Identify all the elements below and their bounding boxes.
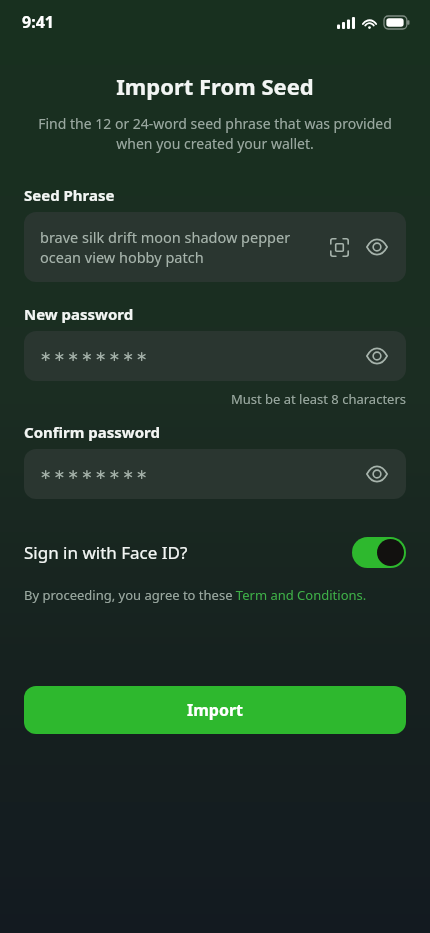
button[interactable]: ∗∗∗∗∗∗∗∗ bbox=[24, 449, 406, 499]
staticText: Import bbox=[187, 699, 244, 721]
button[interactable]: ∗∗∗∗∗∗∗∗ bbox=[24, 331, 406, 381]
staticText: New password bbox=[24, 304, 406, 324]
button[interactable]: Show new password bbox=[362, 341, 392, 371]
staticText: brave silk drift moon shadow pepper ocea… bbox=[40, 227, 291, 268]
staticText: Import From Seed bbox=[0, 71, 430, 101]
staticText: Confirm password bbox=[24, 422, 406, 442]
staticText: ∗∗∗∗∗∗∗∗ bbox=[40, 466, 150, 482]
staticText: ∗∗∗∗∗∗∗∗ bbox=[40, 348, 150, 364]
other: Face ID toggle, on bbox=[352, 537, 406, 568]
button[interactable]: Scan QR code bbox=[324, 232, 354, 262]
staticText: Must be at least 8 characters bbox=[24, 390, 406, 408]
button[interactable]: Sign in with Face ID? bbox=[0, 529, 430, 576]
staticText: 9:41 bbox=[22, 11, 54, 33]
staticText: Seed Phrase bbox=[24, 185, 406, 205]
button[interactable]: Show seed phrase bbox=[362, 232, 392, 262]
button[interactable]: Show confirm password bbox=[362, 459, 392, 489]
staticText: Sign in with Face ID? bbox=[24, 541, 188, 564]
staticText: By proceeding, you agree to these Term a… bbox=[24, 586, 367, 604]
button[interactable]: brave silk drift moon shadow pepper ocea… bbox=[24, 212, 406, 282]
staticText: Find the 12 or 24-word seed phrase that … bbox=[24, 114, 406, 154]
button[interactable]: Import bbox=[24, 686, 406, 734]
